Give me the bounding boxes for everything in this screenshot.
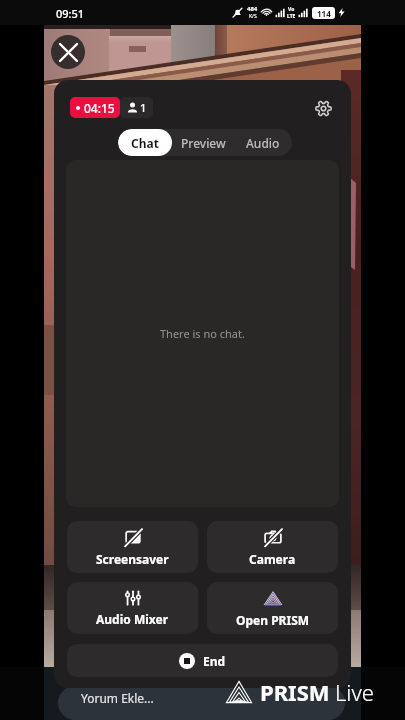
staticText: PRISM xyxy=(260,677,330,707)
staticText: There is no chat. xyxy=(160,326,245,341)
button[interactable]: 1 xyxy=(120,97,153,118)
staticText: 1 xyxy=(140,100,147,115)
staticText: 09:51 xyxy=(56,6,85,21)
button[interactable]: Screensaver xyxy=(67,521,198,573)
button[interactable]: Settings xyxy=(308,93,338,123)
staticText: Audio xyxy=(246,135,280,151)
button[interactable]: 04:15 xyxy=(70,97,120,118)
staticText: 114 xyxy=(317,8,331,19)
button[interactable]: Audio xyxy=(234,129,292,156)
staticText: Audio Mixer xyxy=(96,611,169,627)
button[interactable]: Close xyxy=(51,35,85,69)
staticText: Yorum Ekle... xyxy=(81,690,154,706)
staticText: Open PRISM xyxy=(236,612,310,628)
button[interactable]: Yorum Ekle... xyxy=(58,686,345,720)
staticText: Screensaver xyxy=(96,551,169,567)
staticText: 484 xyxy=(247,5,258,13)
staticText: Camera xyxy=(249,551,296,567)
button[interactable]: End xyxy=(67,644,338,677)
staticText: End xyxy=(203,653,226,669)
button[interactable]: Camera xyxy=(207,521,338,573)
button[interactable]: Chat xyxy=(118,129,172,156)
button[interactable]: Audio Mixer xyxy=(67,582,198,634)
staticText: LTE xyxy=(287,13,296,20)
staticText: Preview xyxy=(181,135,226,151)
staticText: 04:15 xyxy=(84,100,115,116)
staticText: Chat xyxy=(131,135,159,151)
staticText: Live xyxy=(335,677,374,707)
button[interactable]: Open PRISM xyxy=(207,582,338,634)
staticText: K/S xyxy=(249,13,257,20)
button[interactable]: Preview xyxy=(172,129,234,156)
staticText: Vo xyxy=(288,6,295,13)
